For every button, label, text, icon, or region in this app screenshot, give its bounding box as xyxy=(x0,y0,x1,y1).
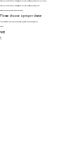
staticText: Please confirm your email address to con… xyxy=(0,0,46,2)
staticText: Please confirm your email address to con… xyxy=(0,5,40,7)
staticText: 1 xyxy=(0,37,2,40)
staticText: Please choose a proper device xyxy=(0,9,23,11)
staticText: Next xyxy=(0,30,5,34)
staticText: Please choose a proper device xyxy=(0,14,42,18)
staticText: To use this product you need to register… xyxy=(0,21,38,23)
staticText: Next xyxy=(0,26,3,27)
